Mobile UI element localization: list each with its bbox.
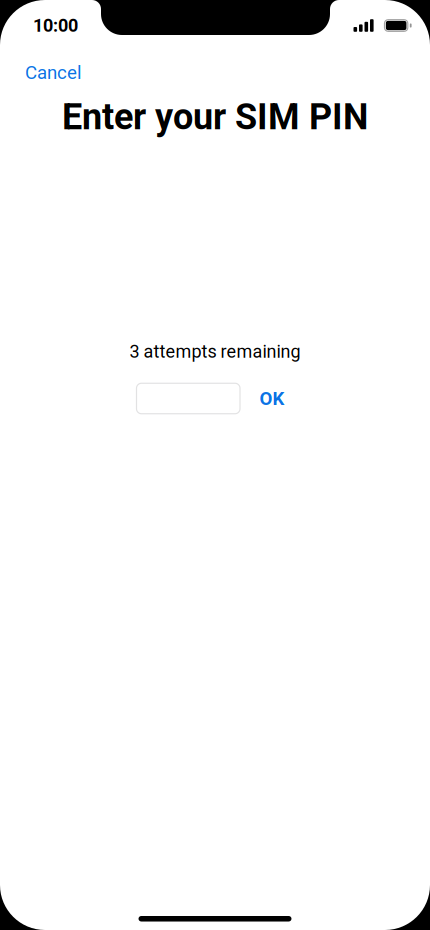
button[interactable]: OK [250,381,293,416]
staticText: 10:00 [33,15,78,36]
staticText: 3 attempts remaining [129,341,300,362]
staticText: OK [259,388,284,409]
staticText: Cancel [25,62,82,83]
button[interactable]: SIM PIN [136,383,240,414]
staticText: Enter your SIM PIN [62,96,368,138]
button[interactable]: Cancel [3,54,94,91]
